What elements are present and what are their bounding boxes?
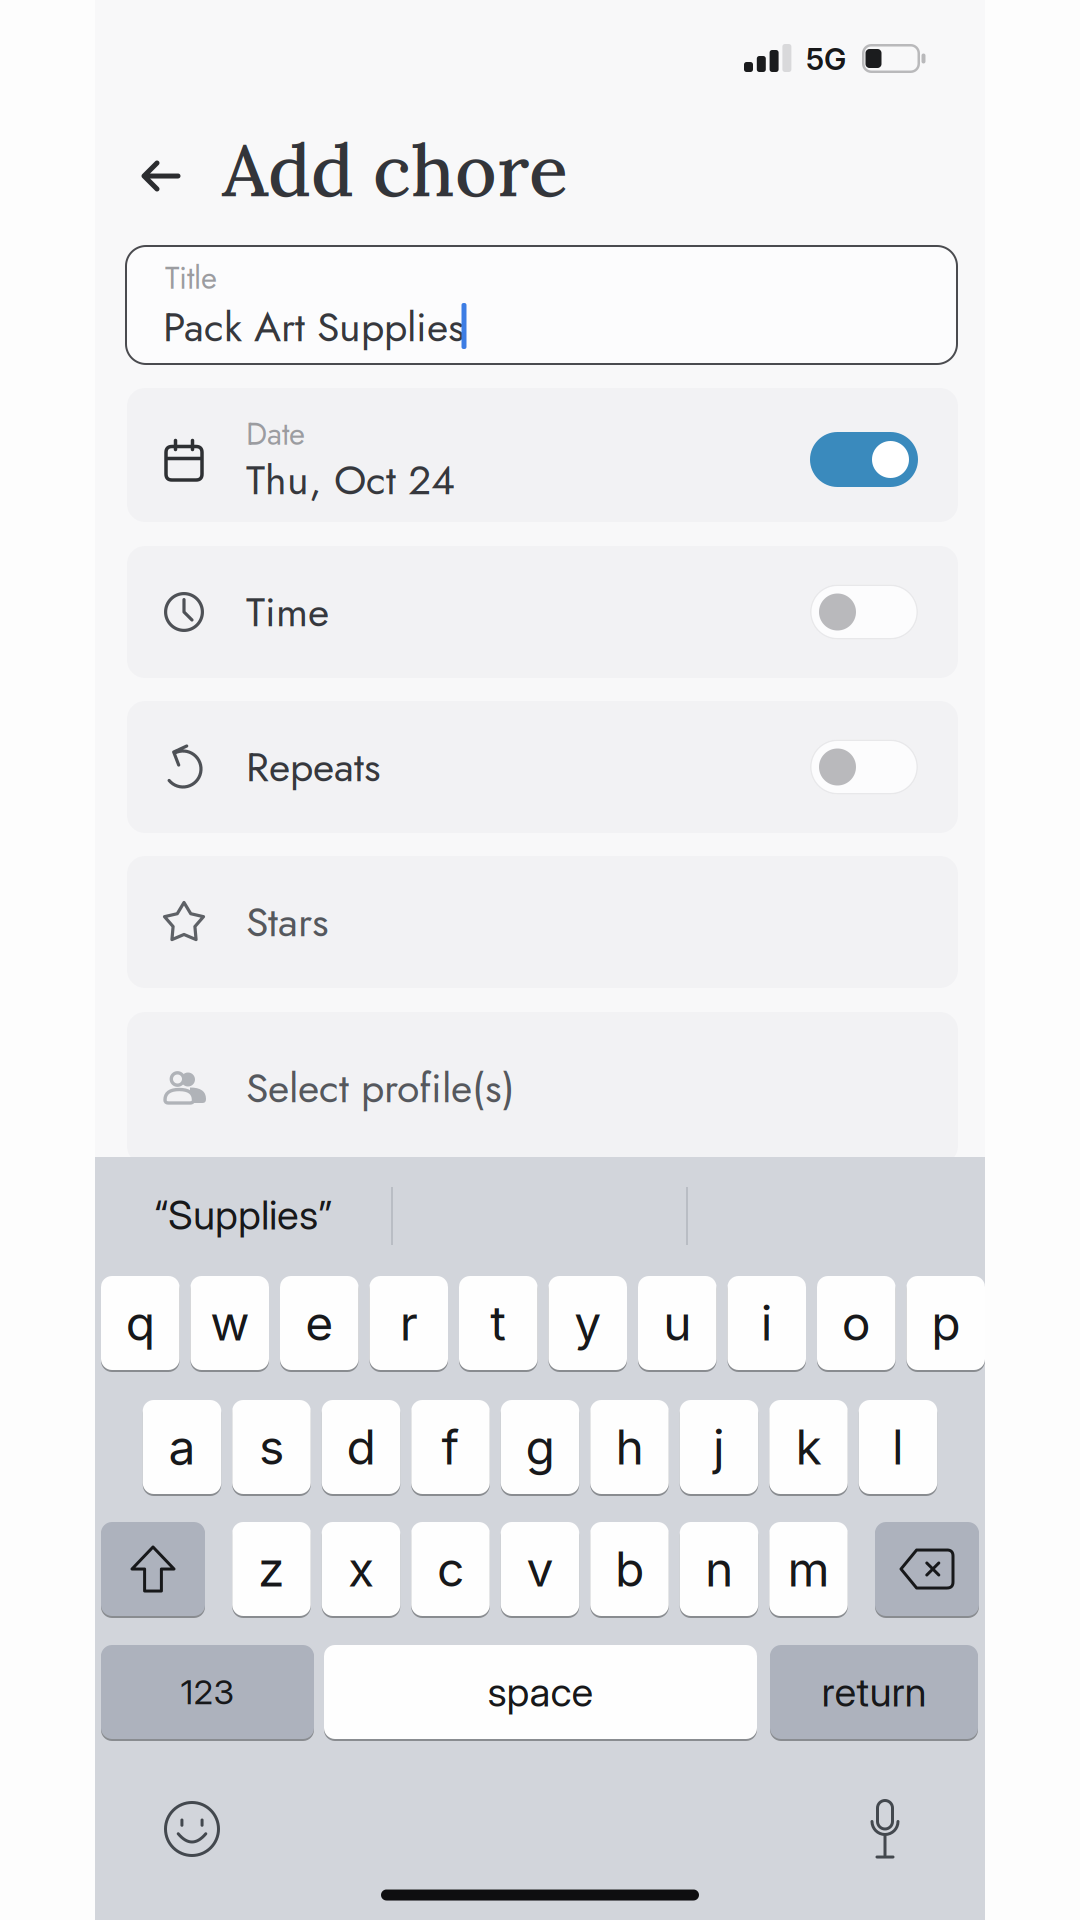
- staticText: r: [400, 1294, 418, 1352]
- button[interactable]: d: [322, 1399, 400, 1495]
- staticText: “Supplies”: [154, 1191, 332, 1239]
- button[interactable]: k: [769, 1399, 848, 1495]
- button[interactable]: u: [638, 1275, 716, 1371]
- staticText: Time: [246, 582, 329, 642]
- staticText: 5G: [806, 41, 846, 77]
- staticText: j: [713, 1418, 725, 1476]
- button[interactable]: s: [232, 1399, 311, 1495]
- staticText: c: [437, 1540, 464, 1598]
- staticText: Date: [246, 412, 305, 456]
- staticText: v: [526, 1540, 553, 1598]
- staticText: Add chore: [222, 124, 568, 216]
- button[interactable]: j: [680, 1399, 758, 1495]
- button[interactable]: n: [680, 1521, 758, 1617]
- staticText: p: [931, 1294, 960, 1352]
- button[interactable]: e: [280, 1275, 358, 1371]
- button[interactable]: Numbers: [101, 1644, 314, 1740]
- staticText: Title: [165, 256, 217, 300]
- button[interactable]: f: [411, 1399, 490, 1495]
- button[interactable]: a: [143, 1399, 221, 1495]
- staticText: space: [487, 1668, 593, 1716]
- button[interactable]: x: [322, 1521, 400, 1617]
- button[interactable]: h: [590, 1399, 669, 1495]
- button[interactable]: z: [232, 1521, 311, 1617]
- staticText: e: [305, 1294, 333, 1352]
- staticText: g: [525, 1418, 554, 1476]
- button[interactable]: o: [817, 1275, 895, 1371]
- staticText: z: [258, 1540, 285, 1598]
- staticText: return: [821, 1668, 926, 1716]
- staticText: s: [259, 1418, 284, 1476]
- button[interactable]: y: [548, 1275, 627, 1371]
- button[interactable]: Delete: [875, 1521, 979, 1617]
- button[interactable]: i: [727, 1275, 806, 1371]
- button[interactable]: Off: [810, 739, 918, 794]
- button[interactable]: g: [501, 1399, 579, 1495]
- button[interactable]: t: [459, 1275, 537, 1371]
- staticText: k: [795, 1418, 821, 1476]
- button[interactable]: Title: [125, 245, 958, 365]
- staticText: Select profile(s): [246, 1058, 515, 1118]
- staticText: Pack Art Supplies: [163, 297, 465, 357]
- staticText: u: [663, 1294, 691, 1352]
- staticText: Repeats: [246, 737, 381, 797]
- button[interactable]: Date: [127, 388, 958, 522]
- staticText: f: [441, 1418, 459, 1476]
- staticText: d: [346, 1418, 375, 1476]
- button[interactable]: q: [101, 1275, 179, 1371]
- staticText: h: [615, 1418, 643, 1476]
- button[interactable]: Select profile(s): [127, 1012, 958, 1164]
- button[interactable]: v: [501, 1521, 579, 1617]
- button[interactable]: On: [810, 432, 918, 487]
- button[interactable]: Repeats: [127, 701, 958, 833]
- button[interactable]: c: [411, 1521, 490, 1617]
- staticText: i: [761, 1294, 773, 1352]
- button[interactable]: space: [324, 1644, 757, 1740]
- button[interactable]: Time: [127, 546, 958, 678]
- button[interactable]: Emoji: [164, 1801, 220, 1857]
- staticText: w: [210, 1294, 249, 1352]
- staticText: q: [126, 1294, 155, 1352]
- staticText: Thu, Oct 24: [246, 450, 455, 510]
- staticText: a: [168, 1418, 195, 1476]
- staticText: n: [705, 1540, 733, 1598]
- button[interactable]: w: [190, 1275, 269, 1371]
- button[interactable]: p: [906, 1275, 985, 1371]
- button[interactable]: Dictate: [868, 1799, 902, 1859]
- staticText: y: [574, 1294, 601, 1352]
- staticText: b: [615, 1540, 644, 1598]
- staticText: t: [490, 1294, 506, 1352]
- button[interactable]: Back: [134, 148, 186, 204]
- button[interactable]: m: [769, 1521, 848, 1617]
- button[interactable]: return: [770, 1644, 978, 1740]
- button[interactable]: b: [590, 1521, 669, 1617]
- staticText: 123: [180, 1671, 234, 1712]
- button[interactable]: l: [859, 1399, 937, 1495]
- staticText: l: [892, 1418, 904, 1476]
- button[interactable]: Shift: [101, 1521, 205, 1617]
- button[interactable]: “Supplies”: [103, 1170, 383, 1260]
- staticText: o: [842, 1294, 871, 1352]
- staticText: Stars: [246, 892, 329, 952]
- button[interactable]: Stars: [127, 856, 958, 988]
- staticText: x: [348, 1540, 374, 1598]
- button[interactable]: r: [369, 1275, 448, 1371]
- staticText: m: [787, 1540, 829, 1598]
- button[interactable]: Off: [810, 584, 918, 639]
